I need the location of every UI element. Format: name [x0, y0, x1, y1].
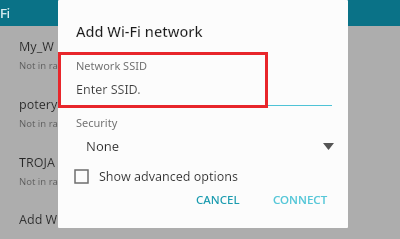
staticText: Not in ra: [19, 175, 58, 188]
button[interactable]: CONNECT: [265, 187, 336, 213]
button[interactable]: CANCEL: [188, 187, 248, 213]
staticText: Show advanced options: [99, 168, 239, 185]
staticText: Security: [76, 115, 118, 130]
staticText: potery: [19, 96, 58, 113]
other: Expand security options: [323, 143, 334, 150]
button[interactable]: Network SSID: [58, 58, 348, 106]
staticText: My_W: [19, 38, 54, 55]
staticText: Add Wi-Fi network: [76, 21, 203, 41]
button[interactable]: Show advanced options: [58, 166, 249, 187]
staticText: Add W: [19, 211, 58, 228]
staticText: None: [86, 137, 120, 155]
staticText: Not in ra: [19, 117, 58, 130]
staticText: CANCEL: [196, 192, 240, 208]
staticText: Network SSID: [76, 58, 147, 73]
button[interactable]: Security: [58, 115, 348, 155]
staticText: Not in ra: [19, 59, 58, 72]
staticText: CONNECT: [273, 192, 328, 208]
staticText: TROJA: [19, 154, 55, 171]
staticText: Fi: [0, 4, 11, 22]
staticText: Enter SSID.: [76, 81, 141, 98]
